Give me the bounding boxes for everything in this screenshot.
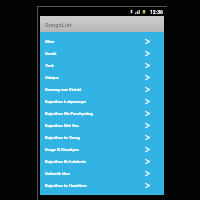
button[interactable]: Rajasthan Me Panchyating xyxy=(40,107,164,119)
staticText: Rajasthan Mat Van xyxy=(45,123,144,128)
staticText: Sikar xyxy=(45,39,144,44)
other: Open Rajasthan Ke Lokdevta xyxy=(144,158,151,165)
other: Open Sathanik Man xyxy=(144,170,151,177)
other: Open Rajasthan k akparanpa xyxy=(144,98,151,105)
button[interactable]: Tonk xyxy=(40,59,164,71)
other: Open Rajasthan Mat Van xyxy=(144,122,151,129)
button[interactable]: Rajasthan k akparanpa xyxy=(40,95,164,107)
button[interactable]: Samnag wne Dinichi xyxy=(40,83,164,95)
staticText: Rajasthan Ke Lokdevta xyxy=(45,159,144,164)
button[interactable]: Rajasthan Mat Van xyxy=(40,119,164,131)
staticText: Rajasthan k akparanpa xyxy=(45,99,144,104)
staticText: Udaipur xyxy=(45,75,144,80)
other: Open Sereki xyxy=(144,50,151,57)
staticText: Samnag wne Dinichi xyxy=(45,87,144,92)
button[interactable]: Sikar xyxy=(40,35,164,47)
staticText: Sereki xyxy=(45,51,144,56)
staticText: Durga Ki Diwatiyan xyxy=(45,147,144,152)
other: Open Durga Ki Diwatiyan xyxy=(144,146,151,153)
other: Open Tonk xyxy=(144,62,151,69)
other: Open Udaipur xyxy=(144,74,151,81)
button[interactable]: Udaipur xyxy=(40,71,164,83)
button[interactable]: Sereki xyxy=(40,47,164,59)
staticText: SongsList xyxy=(45,21,72,28)
staticText: Sathanik Man xyxy=(45,171,144,176)
other: Open Rajasthan ke Uravitives xyxy=(144,182,151,189)
other: Open Sikar xyxy=(144,38,151,45)
button[interactable]: Sathanik Man xyxy=(40,167,164,179)
button[interactable]: Rajasthan Ke Lokdevta xyxy=(40,155,164,167)
staticText: 12:36 xyxy=(150,9,163,15)
button[interactable]: Durga Ki Diwatiyan xyxy=(40,143,164,155)
button[interactable]: Rajasthan ke Uravitives xyxy=(40,179,164,191)
button[interactable]: Rajasthan ke Durag xyxy=(40,131,164,143)
staticText: Tonk xyxy=(45,63,144,68)
other: Open Rajasthan ke Durag xyxy=(144,134,151,141)
staticText: Rajasthan ke Uravitives xyxy=(45,183,144,188)
other: Open Samnag wne Dinichi xyxy=(144,86,151,93)
button[interactable]: SongsList xyxy=(40,16,164,32)
staticText: Rajasthan ke Durag xyxy=(45,135,144,140)
staticText: Rajasthan Me Panchyating xyxy=(45,111,144,116)
other: Open Rajasthan Me Panchyating xyxy=(144,110,151,117)
